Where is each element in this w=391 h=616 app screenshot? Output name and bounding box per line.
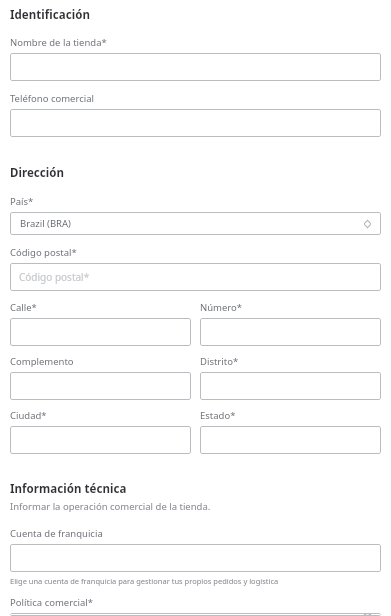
staticText: Código postal* [19, 270, 90, 284]
staticText: Complemento [10, 355, 74, 368]
button[interactable]: País* [10, 212, 381, 235]
staticText: Dirección [10, 165, 65, 181]
staticText: Distrito* [200, 355, 239, 368]
button[interactable]: Calle* [10, 318, 191, 346]
staticText: Cuenta de franquicia [10, 527, 103, 540]
button[interactable]: Estado* [200, 426, 381, 454]
button[interactable]: Distrito* [200, 372, 381, 400]
button[interactable]: Teléfono comercial [10, 109, 381, 137]
button[interactable]: Nombre de la tienda* [10, 53, 381, 81]
staticText: Información técnica [10, 481, 127, 497]
staticText: Identificación [10, 7, 90, 23]
staticText: Número* [200, 301, 243, 314]
button[interactable]: Política comercial* [10, 613, 381, 616]
button[interactable]: Complemento [10, 372, 191, 400]
button[interactable]: Cuenta de franquicia [10, 544, 381, 572]
button[interactable]: Código postal* [10, 263, 381, 291]
button[interactable]: Ciudad* [10, 426, 191, 454]
staticText: Estado* [200, 409, 236, 422]
staticText: Calle* [10, 301, 37, 314]
staticText: Brazil (BRA) [20, 217, 363, 230]
staticText: Elige una cuenta de franquicia para gest… [10, 576, 279, 586]
staticText: Ciudad* [10, 409, 47, 422]
staticText: Teléfono comercial [10, 92, 94, 105]
staticText: Código postal* [10, 246, 77, 259]
staticText: Informar la operación comercial de la ti… [10, 500, 211, 513]
staticText: Política comercial* [10, 596, 93, 609]
staticText: País* [10, 195, 34, 208]
staticText: Seleccione… [20, 613, 363, 616]
button[interactable]: Número* [200, 318, 381, 346]
staticText: Nombre de la tienda* [10, 36, 107, 49]
